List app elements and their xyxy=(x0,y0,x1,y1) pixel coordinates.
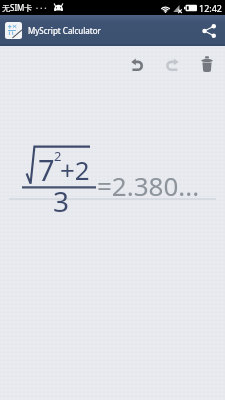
staticText: =2.380... xyxy=(97,168,200,203)
staticText: 2 xyxy=(54,147,62,165)
staticText: +2 xyxy=(60,152,90,187)
button[interactable]: Redo xyxy=(154,46,190,80)
button[interactable]: Delete xyxy=(189,46,225,80)
button[interactable]: Share xyxy=(193,15,225,46)
staticText: 7 xyxy=(38,150,55,189)
button[interactable]: Undo xyxy=(119,46,155,80)
staticText: 12:42 xyxy=(199,2,223,14)
staticText: 无SIM卡 xyxy=(2,2,33,13)
staticText: MyScript Calculator xyxy=(28,25,101,36)
staticText: 3 xyxy=(53,182,70,220)
